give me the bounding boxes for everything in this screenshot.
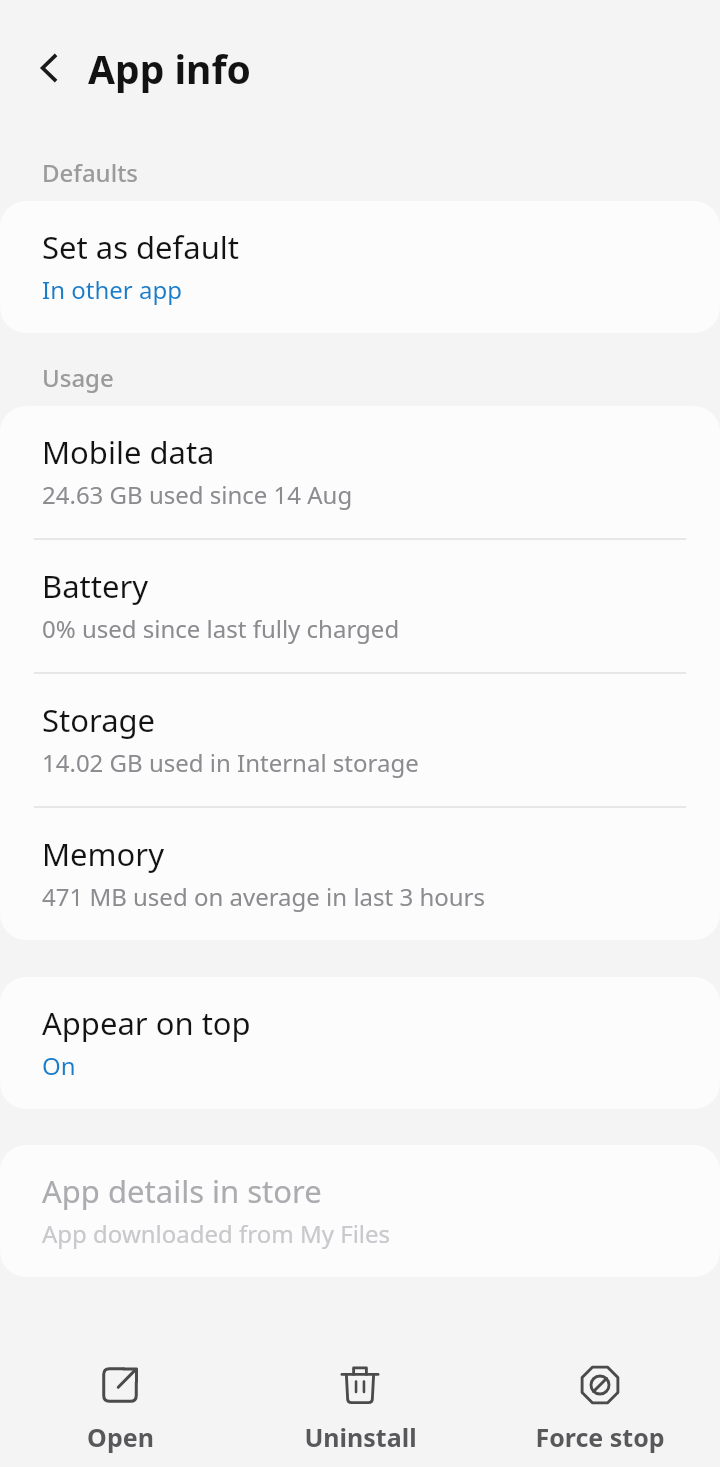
button[interactable]: Open <box>0 1351 240 1466</box>
staticText: Defaults <box>42 156 138 189</box>
staticText: 471 MB used on average in last 3 hours <box>42 880 485 913</box>
staticText: Uninstall <box>304 1420 417 1454</box>
other: Open <box>98 1363 142 1407</box>
button[interactable]: Storage <box>0 674 720 806</box>
button[interactable]: Uninstall <box>240 1351 480 1466</box>
staticText: On <box>42 1049 76 1082</box>
staticText: App details in store <box>42 1170 322 1212</box>
staticText: App downloaded from My Files <box>42 1217 391 1250</box>
button[interactable]: Set as default <box>0 201 720 333</box>
button[interactable]: Appear on top <box>0 977 720 1109</box>
staticText: Storage <box>42 699 156 741</box>
button[interactable]: Battery <box>0 540 720 672</box>
button[interactable]: Memory <box>0 808 720 940</box>
staticText: Open <box>87 1420 154 1454</box>
staticText: 14.02 GB used in Internal storage <box>42 746 419 779</box>
staticText: Memory <box>42 833 164 875</box>
staticText: 0% used since last fully charged <box>42 612 400 645</box>
staticText: Usage <box>42 361 114 394</box>
button[interactable]: Mobile data <box>0 406 720 538</box>
staticText: 24.63 GB used since 14 Aug <box>42 478 353 511</box>
staticText: Mobile data <box>42 431 215 473</box>
other: Force stop <box>578 1363 622 1407</box>
staticText: Set as default <box>42 226 240 268</box>
staticText: In other app <box>42 273 182 306</box>
staticText: Appear on top <box>42 1002 251 1044</box>
button[interactable]: App details in store <box>0 1145 720 1277</box>
staticText: Force stop <box>535 1420 665 1454</box>
other: Uninstall <box>338 1363 382 1407</box>
staticText: App info <box>88 42 251 95</box>
button[interactable]: Back <box>20 39 78 97</box>
staticText: Battery <box>42 565 149 607</box>
button[interactable]: Force stop <box>480 1351 720 1466</box>
